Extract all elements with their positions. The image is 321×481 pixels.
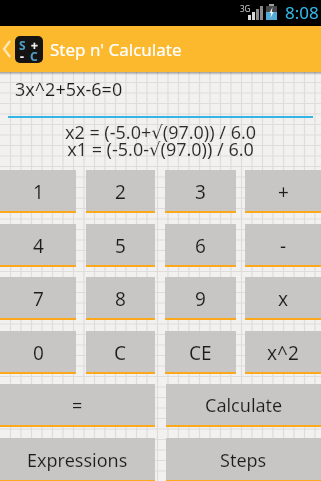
staticText: x [278, 286, 289, 312]
button[interactable]: = [0, 384, 155, 427]
staticText: 4 [33, 233, 44, 259]
staticText: + [31, 37, 38, 53]
staticText: S [19, 37, 26, 53]
staticText: + [278, 179, 289, 205]
button[interactable]: C [86, 331, 155, 374]
staticText: Expressions [27, 448, 128, 473]
button[interactable]: - [245, 224, 321, 267]
button[interactable]: + [245, 170, 321, 213]
staticText: 3 [195, 179, 206, 205]
staticText: = [72, 393, 83, 418]
button[interactable]: Expressions [0, 438, 155, 481]
button[interactable]: 8 [86, 277, 155, 320]
button[interactable]: Calculate [166, 384, 321, 427]
staticText: 8 [115, 286, 126, 312]
staticText: x1 = (-5.0-√(97.0)) / 6.0 [0, 137, 321, 162]
staticText: 8:08 [285, 1, 319, 24]
button[interactable]: x [245, 277, 321, 320]
staticText: 3x^2+5x-6=0 [15, 77, 123, 102]
staticText: x2 = (-5.0+√(97.0)) / 6.0 [0, 120, 321, 145]
button[interactable]: 5 [86, 224, 155, 267]
staticText: Step n' Calculate [50, 38, 182, 61]
button[interactable]: 7 [0, 277, 76, 320]
button[interactable]: 0 [0, 331, 76, 374]
staticText: C [30, 48, 38, 63]
staticText: 5 [115, 233, 126, 259]
staticText: 7 [33, 286, 44, 312]
staticText: 6 [195, 233, 206, 259]
button[interactable]: Steps [166, 438, 321, 481]
button[interactable]: 2 [86, 170, 155, 213]
staticText: x^2 [267, 340, 299, 366]
staticText: CE [189, 340, 212, 366]
staticText: - [280, 233, 287, 259]
button[interactable]: 6 [165, 224, 236, 267]
staticText: Calculate [205, 393, 283, 418]
staticText: Steps [220, 448, 267, 473]
button[interactable]: 4 [0, 224, 76, 267]
staticText: C [114, 340, 127, 366]
staticText: 3G [240, 3, 251, 14]
button[interactable]: 9 [165, 277, 236, 320]
staticText: 1 [33, 179, 44, 205]
button[interactable]: 1 [0, 170, 76, 213]
staticText: 0 [33, 340, 44, 366]
staticText: 2 [115, 179, 126, 205]
button[interactable]: S [0, 26, 321, 72]
button[interactable]: CE [165, 331, 236, 374]
staticText: - [20, 48, 24, 63]
button[interactable]: x^2 [245, 331, 321, 374]
button[interactable]: 3 [165, 170, 236, 213]
staticText: 9 [195, 286, 206, 312]
